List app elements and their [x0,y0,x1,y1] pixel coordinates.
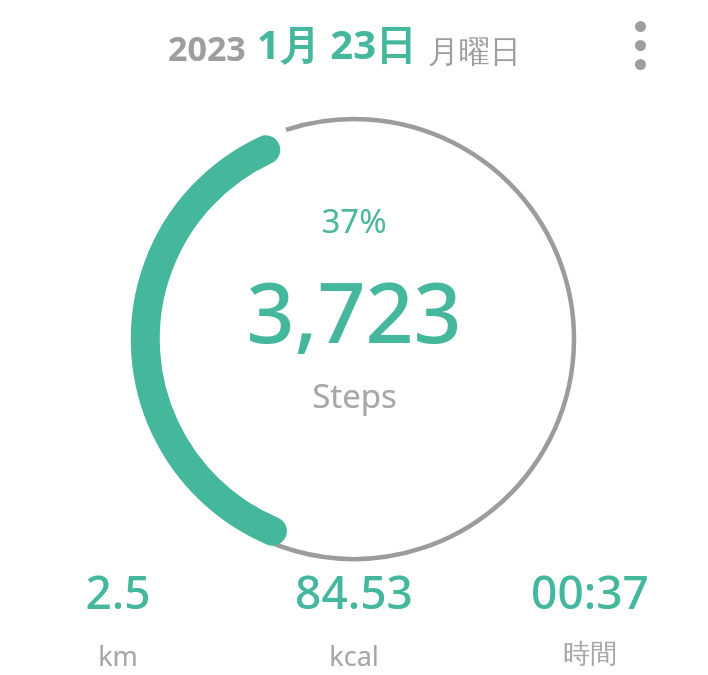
staticText: Steps [312,373,397,418]
button[interactable]: 00:37 [472,560,708,671]
button[interactable]: More options [616,14,664,76]
staticText: 1月 23日 [257,16,417,71]
staticText: 84.53 [295,560,413,623]
staticText: km [98,637,138,674]
staticText: 37% [321,198,387,243]
staticText: 3,723 [246,253,462,367]
staticText: 00:37 [531,560,649,623]
button[interactable]: 2.5 [0,560,236,674]
button[interactable]: 2023 [168,16,521,71]
button[interactable]: 84.53 [236,560,472,674]
staticText: 2023 [168,25,246,71]
staticText: 月曜日 [428,32,521,71]
staticText: 2.5 [85,560,151,623]
staticText: 時間 [563,637,617,671]
staticText: kcal [329,637,379,674]
